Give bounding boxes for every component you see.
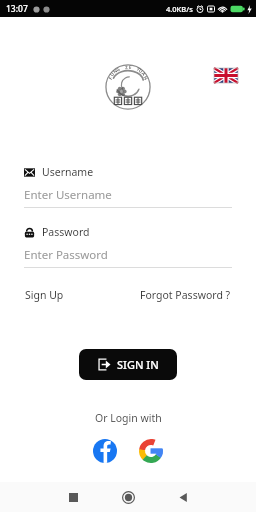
staticText: Password [42, 225, 90, 239]
staticText: SIGN IN [117, 357, 159, 372]
staticText: F [107, 75, 114, 81]
staticText: Sign Up [25, 288, 64, 302]
button[interactable]: Back [166, 482, 200, 512]
button[interactable]: Home [111, 482, 145, 512]
button[interactable]: Enter Password [24, 247, 232, 268]
staticText: Enter Password [24, 247, 108, 263]
staticText: N [142, 75, 150, 81]
button[interactable]: SIGN IN [79, 349, 177, 380]
staticText: E [129, 64, 132, 70]
staticText: Z [125, 64, 128, 70]
staticText: Y [136, 66, 141, 72]
staticText: Username [42, 165, 94, 179]
button[interactable]: Login with Google [136, 436, 166, 466]
staticText: U [138, 67, 144, 75]
staticText: 13:07 [6, 3, 28, 15]
staticText: U [108, 70, 116, 77]
staticText: G [115, 65, 121, 73]
staticText: N [112, 67, 118, 75]
staticText: Enter Username [24, 187, 112, 203]
staticText: Or Login with [95, 411, 162, 425]
button[interactable]: Enter Username [24, 187, 232, 208]
button[interactable]: Sign Up [24, 285, 65, 305]
staticText: Forgot Password ? [140, 288, 231, 302]
button[interactable]: Recents [56, 482, 90, 512]
staticText: 4.0KB/s [166, 4, 193, 14]
button[interactable]: Forgot Password ? [139, 285, 232, 305]
staticText: A [140, 70, 148, 77]
button[interactable]: Change language [214, 68, 238, 83]
button[interactable]: Login with Facebook [90, 436, 120, 466]
